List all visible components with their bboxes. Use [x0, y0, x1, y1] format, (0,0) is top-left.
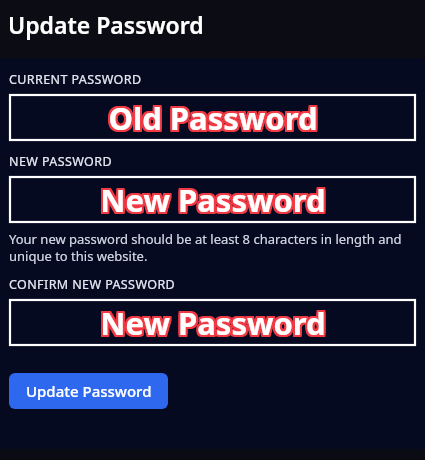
staticText: Old Password	[106, 98, 316, 140]
staticText: New Password	[98, 178, 324, 220]
button[interactable]: Confirm new password	[9, 299, 416, 346]
staticText: New Password	[99, 301, 325, 343]
staticText: New Password	[98, 180, 324, 222]
staticText: Old Password	[106, 96, 316, 138]
staticText: New Password	[101, 177, 327, 219]
staticText: New Password	[101, 180, 327, 222]
staticText: New Password	[99, 303, 325, 345]
staticText: Old Password	[109, 99, 319, 141]
staticText: New Password	[102, 302, 328, 344]
staticText: Old Password	[109, 96, 319, 138]
button[interactable]: New password	[9, 176, 416, 223]
staticText: New Password	[100, 179, 326, 221]
staticText: New Password	[100, 303, 326, 345]
staticText: New Password	[99, 304, 325, 346]
staticText: Old Password	[110, 97, 320, 139]
staticText: Old Password	[108, 97, 318, 139]
staticText: New Password	[102, 181, 328, 223]
staticText: New Password	[98, 177, 324, 219]
staticText: Old Password	[108, 95, 318, 137]
staticText: New Password	[100, 300, 326, 342]
staticText: New Password	[98, 181, 324, 223]
staticText: New Password	[99, 180, 325, 222]
staticText: Old Password	[107, 95, 317, 137]
staticText: CONFIRM NEW PASSWORD	[9, 276, 176, 293]
staticText: New Password	[99, 178, 325, 220]
staticText: New Password	[98, 301, 324, 343]
staticText: New Password	[99, 177, 325, 219]
staticText: New Password	[101, 301, 327, 343]
staticText: Update Password	[26, 381, 152, 401]
staticText: New Password	[98, 304, 324, 346]
staticText: NEW PASSWORD	[9, 153, 112, 170]
staticText: Old Password	[108, 98, 318, 140]
staticText: New Password	[100, 180, 326, 222]
staticText: New Password	[101, 303, 327, 345]
staticText: Old Password	[110, 99, 320, 141]
staticText: New Password	[101, 179, 327, 221]
staticText: Old Password	[106, 97, 316, 139]
staticText: New Password	[98, 303, 324, 345]
staticText: CURRENT PASSWORD	[9, 71, 142, 88]
staticText: New Password	[100, 178, 326, 220]
staticText: Old Password	[106, 99, 316, 141]
staticText: New Password	[101, 304, 327, 346]
staticText: Old Password	[108, 99, 318, 141]
staticText: New Password	[102, 178, 328, 220]
staticText: Old Password	[109, 95, 319, 137]
staticText: New Password	[99, 302, 325, 344]
staticText: Old Password	[110, 96, 320, 138]
staticText: New Password	[102, 180, 328, 222]
staticText: Old Password	[107, 99, 317, 141]
staticText: New Password	[100, 181, 326, 223]
staticText: New Password	[99, 181, 325, 223]
staticText: New Password	[100, 301, 326, 343]
staticText: Old Password	[107, 97, 317, 139]
staticText: New Password	[101, 181, 327, 223]
staticText: New Password	[102, 304, 328, 346]
staticText: Old Password	[110, 98, 320, 140]
staticText: New Password	[98, 300, 324, 342]
staticText: Old Password	[110, 95, 320, 137]
staticText: Old Password	[107, 96, 317, 138]
staticText: Old Password	[109, 97, 319, 139]
staticText: New Password	[98, 302, 324, 344]
staticText: New Password	[102, 301, 328, 343]
staticText: Your new password should be at least 8 c…	[9, 230, 416, 265]
staticText: Update Password	[8, 9, 204, 40]
button[interactable]: Update Password	[9, 373, 168, 409]
staticText: Old Password	[109, 98, 319, 140]
staticText: New Password	[101, 302, 327, 344]
staticText: New Password	[100, 177, 326, 219]
staticText: New Password	[101, 178, 327, 220]
staticText: Old Password	[108, 96, 318, 138]
staticText: New Password	[99, 300, 325, 342]
staticText: New Password	[100, 302, 326, 344]
button[interactable]: Current password	[9, 94, 416, 141]
staticText: Old Password	[106, 95, 316, 137]
staticText: New Password	[102, 300, 328, 342]
staticText: Old Password	[107, 98, 317, 140]
staticText: New Password	[98, 179, 324, 221]
staticText: New Password	[100, 304, 326, 346]
staticText: New Password	[102, 179, 328, 221]
staticText: New Password	[101, 300, 327, 342]
staticText: New Password	[102, 303, 328, 345]
staticText: New Password	[99, 179, 325, 221]
staticText: New Password	[102, 177, 328, 219]
